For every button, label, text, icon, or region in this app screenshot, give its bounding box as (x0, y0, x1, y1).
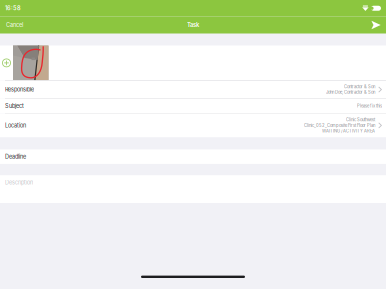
staticText: Please fix this (357, 103, 382, 108)
staticText: Description (5, 179, 33, 186)
staticText: Subject (5, 103, 24, 109)
staticText: Task (187, 21, 199, 28)
staticText: Location (5, 122, 26, 129)
button[interactable]: Responsible (0, 81, 386, 98)
staticText: 16:58 (5, 5, 21, 12)
staticText: Clinic_052_Composite First Floor Plan (304, 123, 375, 128)
button[interactable]: Deadline (0, 149, 386, 164)
button[interactable]: Photo attachment (13, 45, 48, 80)
button[interactable]: Location (0, 114, 386, 137)
button[interactable]: Add attachment (0, 45, 13, 80)
staticText: WAITING / ACTIVITY AREA (322, 128, 375, 133)
staticText: Deadline (5, 153, 26, 160)
staticText: Clinic Southwest (346, 117, 375, 122)
staticText: Cancel (6, 22, 23, 28)
button[interactable]: Cancel (0, 18, 31, 32)
staticText: Responsible (5, 86, 34, 93)
button[interactable]: Send (363, 16, 386, 33)
staticText: John Doe, Contractor & Son (326, 90, 375, 95)
button[interactable]: Subject (0, 99, 386, 113)
staticText: Contractor & Son (344, 84, 375, 89)
